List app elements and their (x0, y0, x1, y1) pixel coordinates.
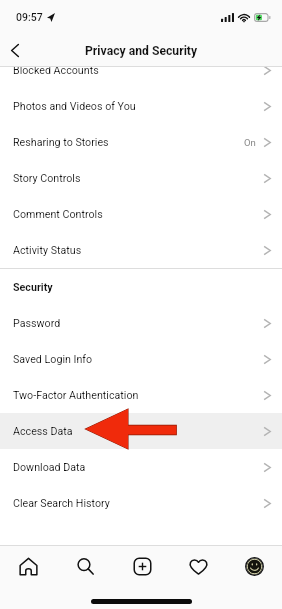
staticText: Download Data (13, 461, 86, 474)
staticText: Password (13, 317, 61, 330)
button[interactable]: Story Controls (0, 160, 282, 196)
staticText: Resharing to Stories (13, 136, 109, 149)
staticText: Activity Status (13, 244, 82, 257)
staticText: Security (13, 281, 53, 294)
staticText: Privacy and Security (85, 44, 198, 58)
button[interactable]: Security (0, 269, 282, 305)
staticText: Two-Factor Authentication (13, 389, 139, 402)
button[interactable]: Download Data (0, 449, 282, 485)
button[interactable]: Saved Login Info (0, 341, 282, 377)
button[interactable]: Home (0, 546, 57, 586)
staticText: Saved Login Info (13, 353, 93, 366)
button[interactable]: Activity Status (0, 232, 282, 268)
button[interactable]: Comment Controls (0, 196, 282, 232)
button[interactable]: Search (57, 546, 114, 586)
staticText: Comment Controls (13, 208, 103, 221)
button[interactable]: Photos and Videos of You (0, 88, 282, 124)
staticText: Photos and Videos of You (13, 100, 136, 113)
staticText: Clear Search History (13, 497, 110, 510)
button[interactable]: Profile (226, 546, 282, 586)
button[interactable]: Two-Factor Authentication (0, 377, 282, 413)
button[interactable]: Back (0, 35, 30, 65)
button[interactable]: Blocked Accounts (0, 67, 282, 88)
staticText: Blocked Accounts (13, 67, 99, 77)
staticText: Story Controls (13, 172, 81, 185)
button[interactable]: Clear Search History (0, 485, 282, 521)
button[interactable]: Password (0, 305, 282, 341)
button[interactable]: Activity (170, 546, 226, 586)
staticText: 09:57 (16, 11, 43, 23)
button[interactable]: Resharing to Stories (0, 124, 282, 160)
button[interactable]: New post (114, 546, 170, 586)
staticText: Access Data (13, 425, 73, 438)
button[interactable]: Access Data (0, 413, 282, 449)
staticText: On (244, 137, 256, 148)
